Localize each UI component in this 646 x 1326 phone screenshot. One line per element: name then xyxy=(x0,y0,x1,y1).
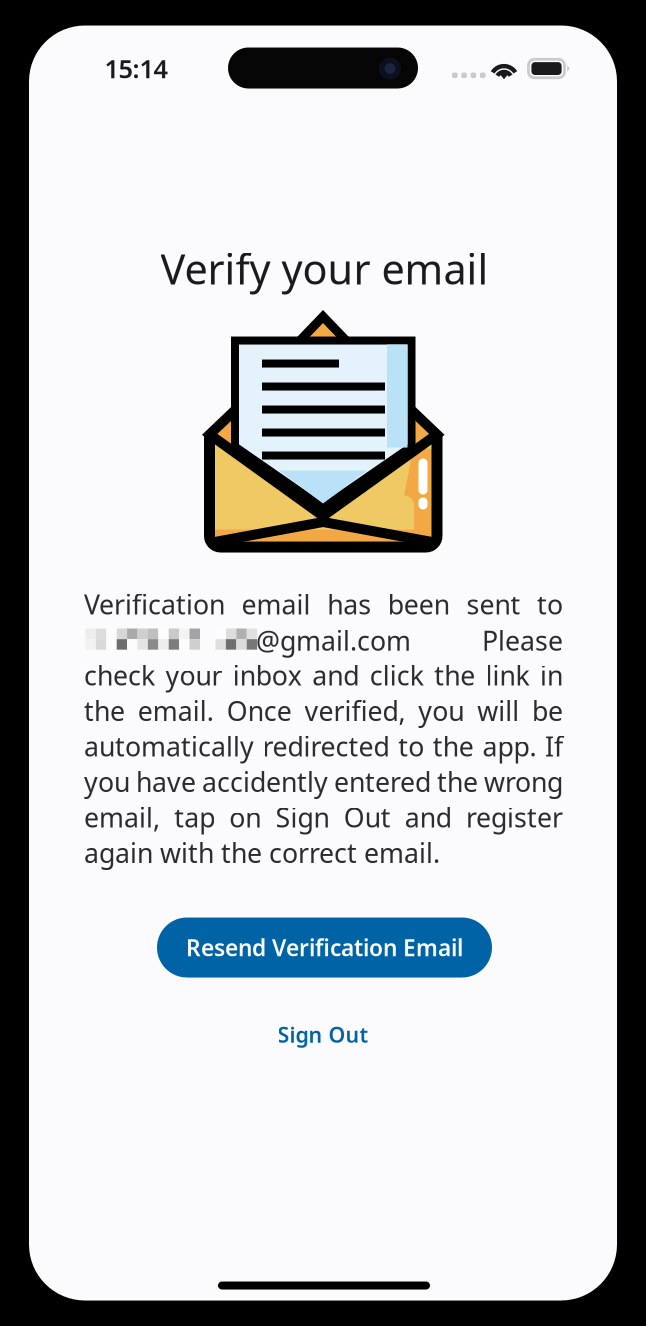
staticText: have xyxy=(136,764,196,799)
staticText: in xyxy=(540,657,563,693)
button[interactable]: Resend Verification Email xyxy=(157,917,492,977)
staticText: Once xyxy=(227,693,292,728)
staticText: on xyxy=(229,799,261,835)
staticText: you xyxy=(418,693,464,728)
staticText: Verification xyxy=(84,586,225,622)
staticText: redirected xyxy=(263,728,390,764)
staticText: app. xyxy=(482,728,536,764)
staticText: If xyxy=(545,728,563,764)
staticText: your xyxy=(165,657,222,693)
staticText: Please xyxy=(482,623,563,658)
staticText: click xyxy=(370,657,424,693)
button[interactable]: Sign Out xyxy=(223,1011,423,1057)
staticText: has xyxy=(327,586,371,622)
staticText: tap xyxy=(174,799,215,835)
staticText: Sign xyxy=(275,799,329,835)
staticText: you xyxy=(84,764,130,799)
staticText: @gmail.com xyxy=(256,623,411,658)
staticText: again with the correct email. xyxy=(84,835,440,870)
staticText: accidently xyxy=(202,764,328,799)
staticText: Sign Out xyxy=(277,1020,368,1049)
staticText: Verify your email xyxy=(160,241,488,296)
staticText: check xyxy=(84,657,155,693)
staticText: sent xyxy=(466,586,520,622)
staticText: the xyxy=(84,693,125,728)
staticText: and xyxy=(312,657,359,693)
staticText: automatically xyxy=(84,728,254,764)
staticText: the xyxy=(434,657,475,693)
staticText: to xyxy=(537,586,563,622)
staticText: verified, xyxy=(304,693,405,728)
staticText: email. xyxy=(138,693,214,728)
staticText: be xyxy=(532,693,563,728)
staticText: Resend Verification Email xyxy=(186,932,463,962)
staticText: entered xyxy=(334,764,431,799)
staticText: the xyxy=(433,728,474,764)
staticText: the xyxy=(437,764,478,799)
staticText: inbox xyxy=(233,657,302,693)
staticText: register xyxy=(466,799,563,835)
staticText: wrong xyxy=(484,764,563,799)
staticText: link xyxy=(486,657,530,693)
staticText: and xyxy=(405,799,452,835)
staticText: been xyxy=(388,586,450,622)
staticText: 15:14 xyxy=(104,52,167,85)
staticText: Out xyxy=(344,799,391,835)
staticText: will xyxy=(477,693,519,728)
staticText: to xyxy=(398,728,424,764)
staticText: email, xyxy=(84,799,160,835)
staticText: email xyxy=(242,586,311,622)
